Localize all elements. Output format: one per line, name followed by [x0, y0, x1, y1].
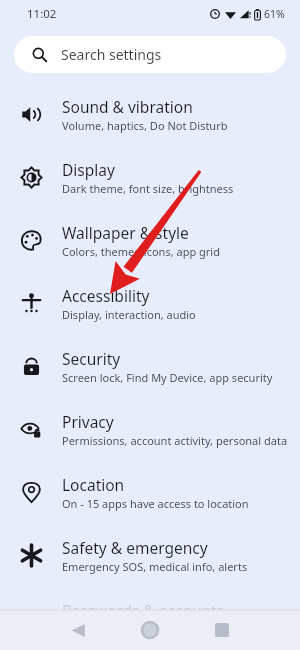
staticText: Dark theme, font size, brightness: [62, 181, 234, 196]
button[interactable]: Display: [0, 146, 300, 209]
staticText: Search settings: [61, 45, 162, 64]
staticText: Emergency SOS, medical info, alerts: [62, 559, 248, 574]
staticText: Volume, haptics, Do Not Disturb: [62, 118, 228, 133]
button[interactable]: Wallpaper & style: [0, 209, 300, 272]
staticText: Display: [62, 159, 115, 180]
staticText: Permissions, account activity, personal …: [62, 433, 288, 448]
staticText: Saved passwords, autofill, synced accoun…: [62, 622, 284, 637]
staticText: 61%: [264, 7, 285, 21]
button[interactable]: Sound & vibration: [0, 83, 300, 146]
button[interactable]: Security: [0, 335, 300, 398]
staticText: Sound & vibration: [62, 96, 193, 117]
staticText: Privacy: [62, 411, 114, 432]
staticText: Passwords & accounts: [62, 600, 225, 621]
button[interactable]: Back: [62, 614, 94, 646]
staticText: 11:02: [27, 6, 57, 22]
staticText: Safety & emergency: [62, 537, 208, 558]
staticText: Accessibility: [62, 285, 150, 306]
staticText: Screen lock, Find My Device, app securit…: [62, 370, 273, 385]
button[interactable]: Location: [0, 461, 300, 524]
staticText: Security: [62, 348, 121, 369]
staticText: Wallpaper & style: [62, 222, 189, 243]
button[interactable]: Recent apps: [206, 614, 238, 646]
staticText: Location: [62, 474, 125, 495]
button[interactable]: Privacy: [0, 398, 300, 461]
staticText: Display, interaction, audio: [62, 307, 196, 322]
button[interactable]: Safety & emergency: [0, 524, 300, 587]
button[interactable]: Home: [134, 614, 166, 646]
button[interactable]: Accessibility: [0, 272, 300, 335]
staticText: Colors, themed icons, app grid: [62, 244, 220, 259]
button[interactable]: Search settings: [14, 36, 286, 73]
staticText: On - 15 apps have access to location: [62, 496, 249, 511]
